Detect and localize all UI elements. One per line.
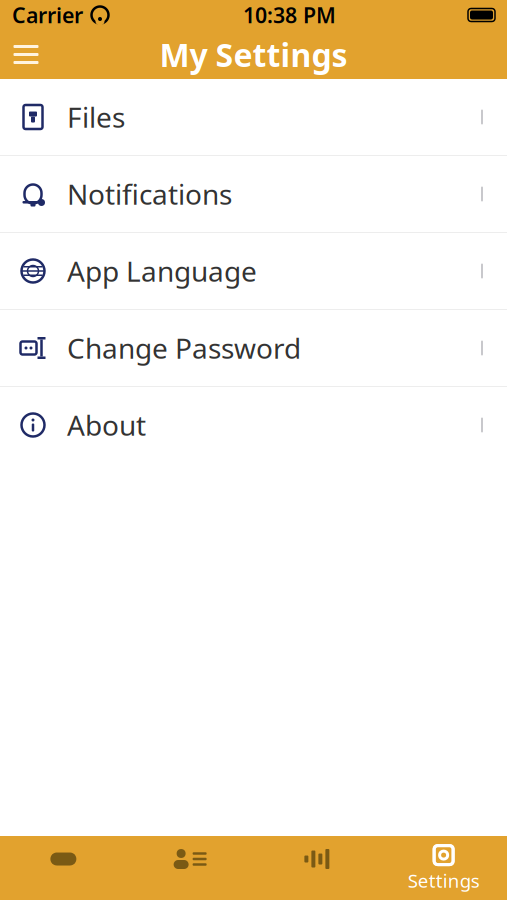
button[interactable]: Contacts: [127, 836, 254, 900]
button[interactable]: Menu: [0, 32, 52, 76]
button[interactable]: Reports: [253, 836, 380, 900]
staticText: App Language: [67, 252, 257, 290]
button[interactable]: About: [0, 387, 507, 463]
button[interactable]: Notifications: [0, 156, 507, 232]
staticText: 10:38 PM: [243, 1, 336, 29]
button[interactable]: Files: [0, 79, 507, 155]
staticText: Notifications: [67, 175, 232, 213]
staticText: Settings: [408, 868, 480, 893]
staticText: Carrier: [12, 1, 83, 29]
button[interactable]: App Language: [0, 233, 507, 309]
button[interactable]: Change Password: [0, 310, 507, 386]
staticText: About: [67, 406, 146, 444]
staticText: My Settings: [159, 33, 347, 76]
button[interactable]: Settings: [380, 836, 507, 900]
button[interactable]: Deals: [0, 836, 127, 900]
staticText: Files: [67, 98, 125, 136]
staticText: Change Password: [67, 329, 301, 367]
